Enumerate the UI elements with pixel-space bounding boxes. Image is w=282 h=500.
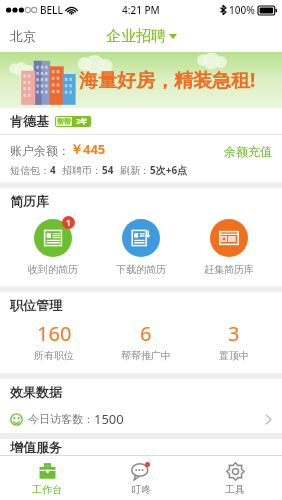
staticText: 增值服务 — [10, 439, 62, 455]
button[interactable]: 工具 — [188, 456, 282, 500]
staticText: 叮咚 — [131, 483, 151, 496]
staticText: 3年 — [76, 117, 88, 127]
staticText: 海量好房，精装急租! — [79, 67, 256, 93]
button[interactable]: 工作台 — [0, 456, 94, 500]
staticText: 收到的简历 — [28, 263, 78, 276]
button[interactable]: 海量好房，精装急租 — [0, 52, 282, 107]
staticText: ￥445 — [70, 140, 106, 158]
button[interactable]: 3 — [205, 318, 263, 364]
staticText: 100% — [229, 3, 255, 17]
button[interactable]: 赶集简历库 — [194, 214, 264, 278]
staticText: 刷新： — [120, 164, 150, 177]
staticText: 1500 — [94, 410, 124, 428]
staticText: 肯德基 — [10, 113, 49, 129]
staticText: 下载的简历 — [116, 263, 166, 276]
button[interactable]: 企业招聘 — [98, 23, 185, 50]
staticText: 短信包： — [10, 164, 50, 177]
staticText: 效果数据 — [10, 384, 62, 400]
button[interactable]: 6 — [107, 318, 185, 364]
staticText: 招聘币： — [62, 164, 102, 177]
staticText: 今日访客数： — [28, 412, 94, 426]
staticText: 赶集简历库 — [204, 263, 254, 276]
button[interactable]: 1 — [18, 214, 88, 278]
button[interactable]: 160 — [20, 318, 88, 364]
staticText: 6 — [140, 320, 152, 347]
staticText: 5次+6点 — [150, 163, 188, 177]
staticText: 4:21 PM — [122, 3, 160, 17]
button[interactable]: 下载的简历 — [106, 214, 176, 278]
staticText: 工作台 — [32, 483, 62, 496]
staticText: 帮帮推广中 — [121, 349, 171, 362]
staticText: 职位管理 — [10, 297, 62, 313]
staticText: 所有职位 — [34, 349, 74, 362]
staticText: 帮帮 — [57, 117, 71, 126]
staticText: BELL — [40, 3, 63, 17]
staticText: 账户余额： — [10, 143, 70, 158]
staticText: 3 — [228, 320, 240, 347]
button[interactable]: 叮咚 — [94, 456, 188, 500]
staticText: 余额充值 — [224, 144, 272, 159]
staticText: 北京 — [10, 28, 36, 44]
staticText: 置顶中 — [219, 349, 249, 362]
button[interactable]: 北京 — [0, 24, 46, 48]
staticText: 54 — [102, 163, 114, 177]
staticText: 160 — [37, 320, 72, 347]
staticText: 简历库 — [10, 193, 49, 209]
staticText: 企业招聘 — [106, 27, 166, 46]
staticText: 1 — [66, 217, 71, 228]
staticText: 4 — [50, 163, 56, 177]
button[interactable]: 余额充值 — [214, 141, 282, 162]
staticText: 工具 — [225, 483, 245, 496]
button[interactable]: 今日访客数： — [0, 405, 282, 433]
